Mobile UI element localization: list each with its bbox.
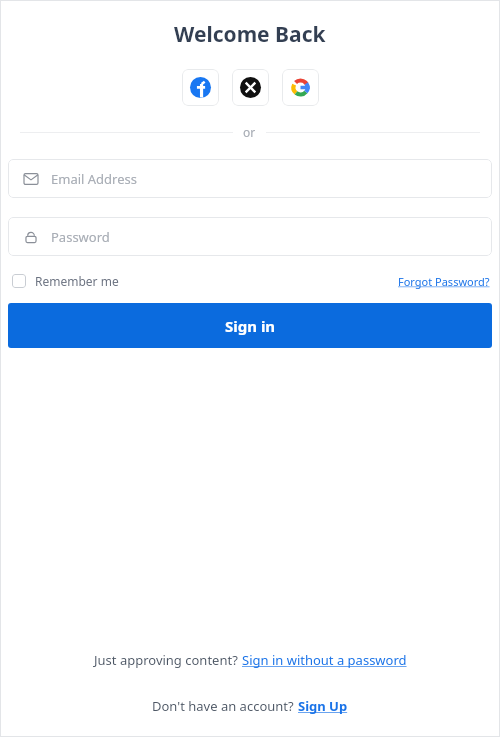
button[interactable]: Remember me <box>8 268 123 294</box>
button[interactable]: Sign in with Google <box>282 69 319 106</box>
button[interactable]: Don't have an account? <box>148 693 352 719</box>
staticText: Just approving content? <box>94 651 242 669</box>
button[interactable]: Forgot Password? <box>396 269 492 294</box>
staticText: Sign in without a password <box>242 651 407 669</box>
button[interactable]: Sign in <box>8 303 492 348</box>
staticText: or <box>243 124 256 140</box>
button[interactable]: Just approving content? <box>90 647 411 673</box>
staticText: Don't have an account? <box>152 697 298 715</box>
button[interactable]: Sign in with Facebook <box>182 69 219 106</box>
staticText: Welcome Back <box>174 20 326 49</box>
button[interactable]: Sign in with X <box>232 69 269 106</box>
staticText: Password <box>51 228 110 246</box>
staticText: Sign Up <box>298 697 348 715</box>
button[interactable]: Email Address <box>8 159 492 198</box>
staticText: Email Address <box>51 170 137 188</box>
button[interactable]: Password <box>8 217 492 256</box>
staticText: Sign in <box>225 316 276 336</box>
staticText: Remember me <box>35 273 119 289</box>
staticText: Forgot Password? <box>398 274 490 289</box>
